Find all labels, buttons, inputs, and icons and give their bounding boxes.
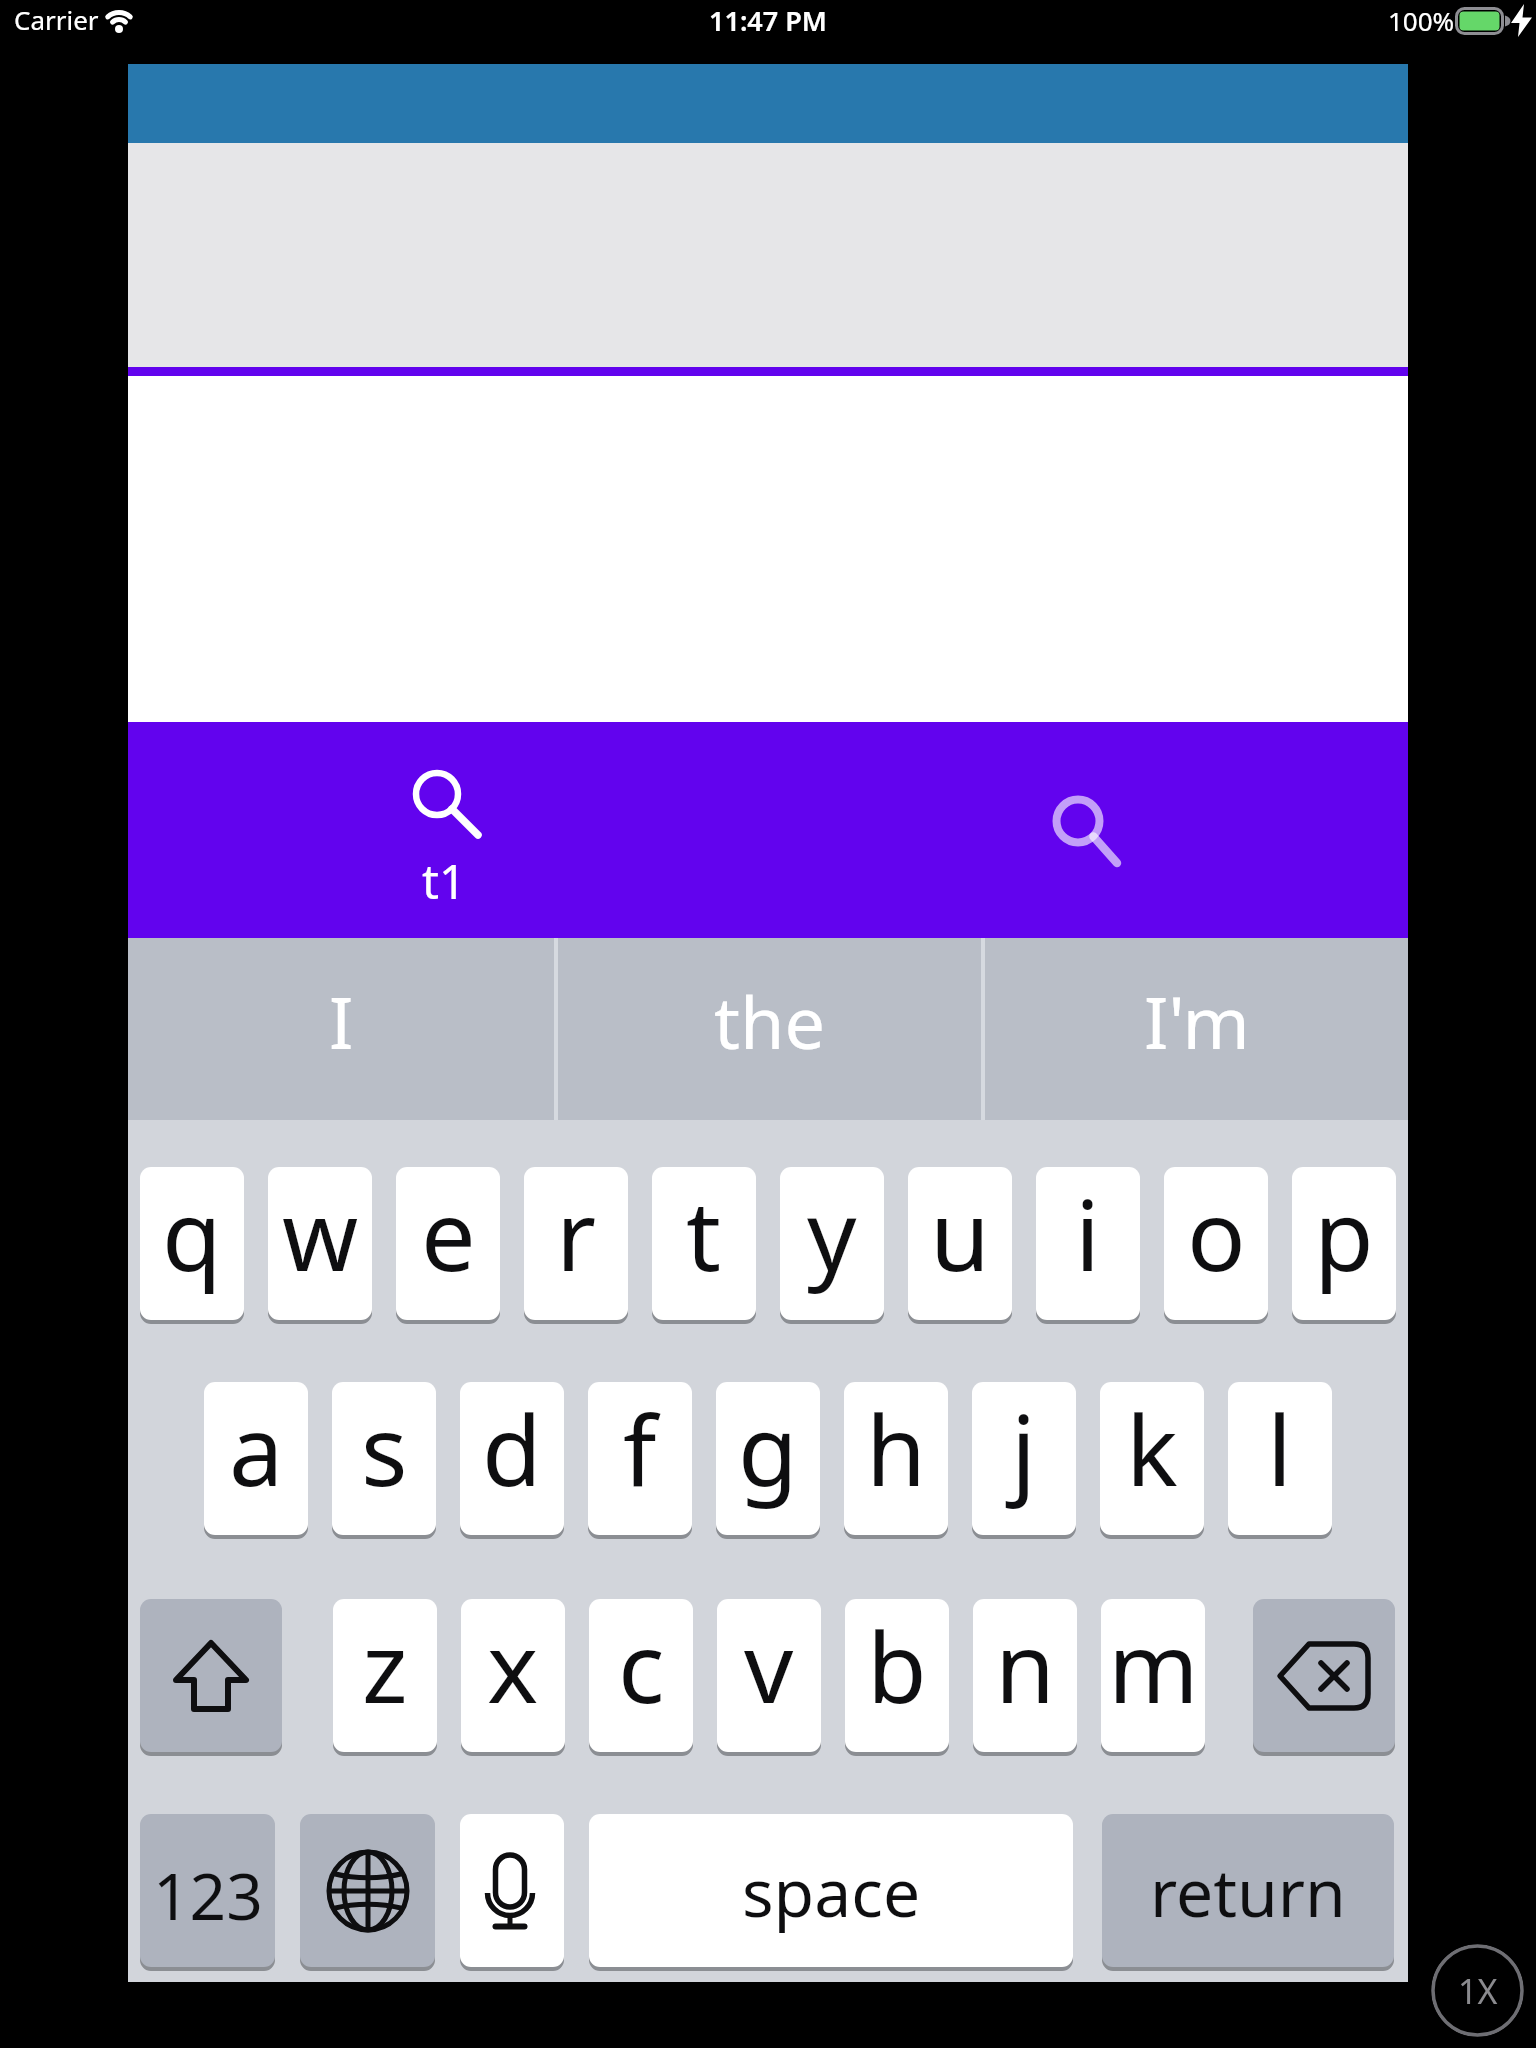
button[interactable] [300, 1814, 435, 1967]
button[interactable]: l [1228, 1382, 1332, 1535]
staticText: n [995, 1599, 1055, 1731]
staticText: j [1011, 1382, 1037, 1514]
button[interactable]: space [589, 1814, 1073, 1967]
staticText: f [623, 1382, 657, 1514]
button[interactable]: r [524, 1167, 628, 1320]
button[interactable]: y [780, 1167, 884, 1320]
button[interactable]: t [652, 1167, 756, 1320]
button[interactable]: z [333, 1599, 437, 1752]
button[interactable]: j [972, 1382, 1076, 1535]
staticText: s [361, 1382, 408, 1514]
button[interactable]: I'm [985, 938, 1408, 1120]
button[interactable]: u [908, 1167, 1012, 1320]
button[interactable]: x [461, 1599, 565, 1752]
button[interactable] [1028, 771, 1128, 871]
staticText: l [1267, 1382, 1293, 1514]
button[interactable]: b [845, 1599, 949, 1752]
staticText: r [556, 1167, 597, 1299]
button[interactable]: n [973, 1599, 1077, 1752]
staticText: 123 [153, 1852, 263, 1939]
button[interactable]: p [1292, 1167, 1396, 1320]
staticText: q [162, 1167, 222, 1299]
button[interactable]: w [268, 1167, 372, 1320]
button[interactable]: I [128, 938, 554, 1120]
staticText: c [618, 1599, 665, 1731]
staticText: a [229, 1382, 284, 1514]
staticText: i [1075, 1167, 1101, 1299]
staticText: o [1187, 1167, 1246, 1299]
button[interactable] [1253, 1599, 1395, 1752]
staticText: 100% [1388, 3, 1455, 38]
button[interactable]: g [716, 1382, 820, 1535]
staticText: Carrier [14, 2, 99, 37]
staticText: I'm [1144, 972, 1250, 1070]
staticText: v [744, 1599, 794, 1731]
button[interactable]: k [1100, 1382, 1204, 1535]
button[interactable] [140, 1599, 282, 1752]
staticText: t [686, 1167, 722, 1299]
staticText: h [866, 1382, 926, 1514]
staticText: t1 [422, 849, 466, 899]
button[interactable]: v [717, 1599, 821, 1752]
button[interactable]: h [844, 1382, 948, 1535]
staticText: z [362, 1599, 408, 1731]
button[interactable]: c [589, 1599, 693, 1752]
button[interactable]: return [1102, 1814, 1394, 1967]
staticText: m [1108, 1599, 1199, 1731]
button[interactable]: 1X [1431, 1944, 1524, 2037]
staticText: p [1314, 1167, 1374, 1299]
staticText: return [1150, 1846, 1346, 1936]
button[interactable]: the [558, 938, 981, 1120]
button[interactable]: d [460, 1382, 564, 1535]
staticText: e [421, 1167, 476, 1299]
staticText: u [930, 1167, 990, 1299]
staticText: k [1126, 1382, 1178, 1514]
staticText: space [742, 1846, 921, 1936]
staticText: b [867, 1599, 927, 1731]
button[interactable]: f [588, 1382, 692, 1535]
staticText: g [738, 1382, 798, 1514]
staticText: the [714, 972, 826, 1070]
button[interactable]: t1 [384, 742, 504, 918]
staticText: y [807, 1167, 857, 1299]
staticText: I [329, 972, 354, 1070]
button[interactable]: 123 [140, 1814, 275, 1967]
staticText: x [487, 1599, 539, 1731]
button[interactable]: e [396, 1167, 500, 1320]
button[interactable]: s [332, 1382, 436, 1535]
staticText: 1X [1458, 1968, 1498, 2014]
button[interactable] [460, 1814, 564, 1967]
button[interactable]: q [140, 1167, 244, 1320]
button[interactable]: a [204, 1382, 308, 1535]
button[interactable]: m [1101, 1599, 1205, 1752]
button[interactable]: o [1164, 1167, 1268, 1320]
staticText: d [482, 1382, 542, 1514]
staticText: 11:47 PM [709, 2, 827, 39]
button[interactable]: i [1036, 1167, 1140, 1320]
staticText: w [282, 1167, 359, 1299]
